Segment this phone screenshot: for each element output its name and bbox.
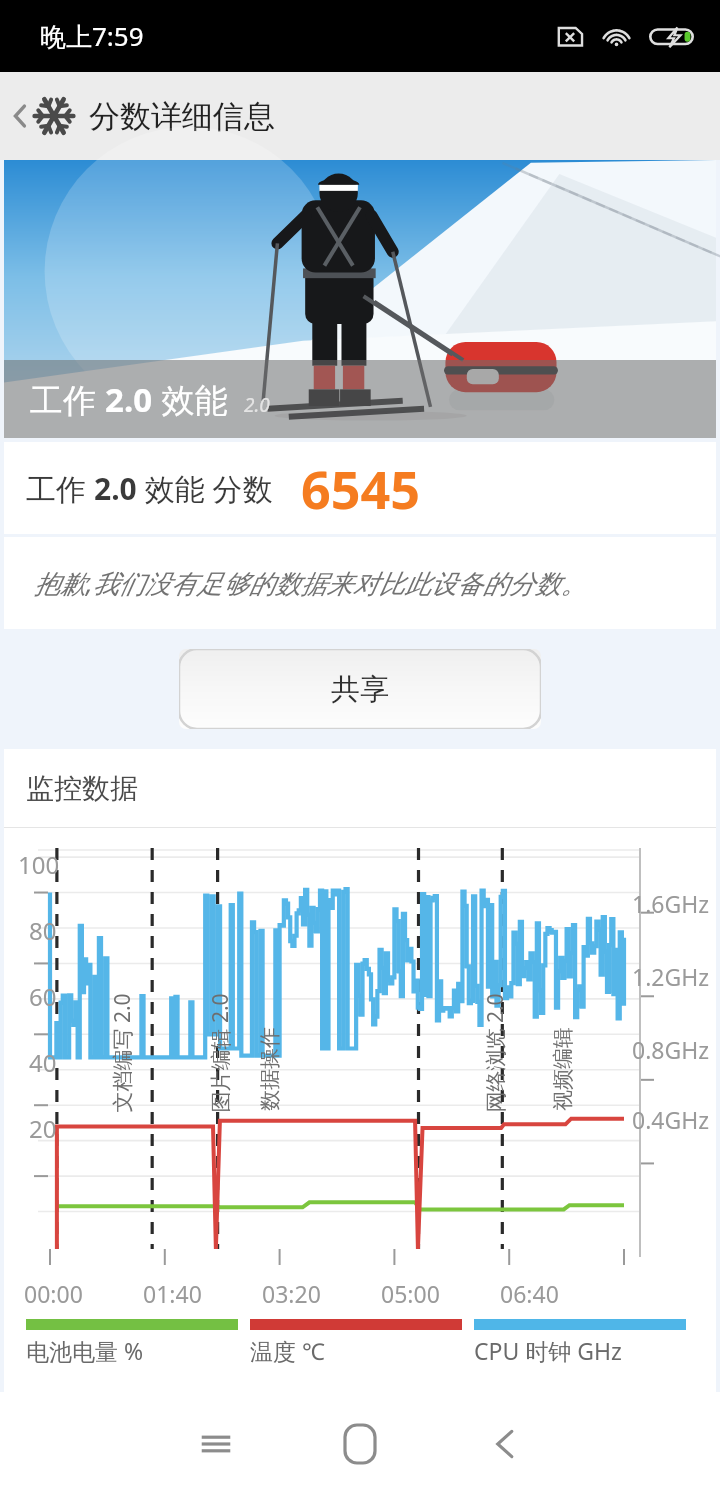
staticText: 0.8GHz xyxy=(632,1034,710,1065)
staticText: 效能 分数 xyxy=(137,468,273,509)
staticText: 温度 ℃ xyxy=(250,1335,325,1366)
button[interactable]: Recent apps xyxy=(144,1392,288,1496)
staticText: 01:40 xyxy=(143,1278,202,1309)
staticText: 分数详细信息 xyxy=(89,97,275,136)
staticText: 视频编辑 xyxy=(550,1027,576,1111)
staticText: 80 xyxy=(29,914,57,947)
staticText: 0.4GHz xyxy=(632,1104,710,1135)
button[interactable]: 工作 xyxy=(4,442,716,534)
staticText: 共享 xyxy=(331,671,389,708)
staticText: 00:00 xyxy=(24,1278,83,1309)
staticText: 1.6GHz xyxy=(632,888,710,919)
button[interactable]: 工作 xyxy=(4,160,716,438)
staticText: 电池电量 % xyxy=(26,1335,144,1366)
staticText: 网络浏览 2.0 xyxy=(480,992,509,1112)
staticText: 图片编辑 2.0 xyxy=(205,992,234,1112)
staticText: 晚上7:59 xyxy=(40,18,144,54)
staticText: CPU 时钟 GHz xyxy=(474,1335,622,1366)
staticText: 2.0 xyxy=(105,377,153,422)
staticText: 2.0 xyxy=(244,392,270,418)
button[interactable]: Back xyxy=(0,72,720,160)
staticText: 数据操作 xyxy=(257,1027,283,1111)
staticText: 60 xyxy=(29,980,57,1013)
staticText: 监控数据 xyxy=(26,771,138,806)
staticText: 效能 xyxy=(153,377,228,422)
button[interactable]: Home xyxy=(288,1392,432,1496)
staticText: 1.2GHz xyxy=(632,961,710,992)
staticText: 40 xyxy=(29,1046,57,1079)
staticText: 6545 xyxy=(301,453,420,524)
staticText: 文档编写 2.0 xyxy=(107,992,136,1112)
staticText: 20 xyxy=(29,1112,57,1145)
staticText: 06:40 xyxy=(500,1278,559,1309)
staticText: 03:20 xyxy=(262,1278,321,1309)
staticText: 抱歉,我们没有足够的数据来对比此设备的分数。 xyxy=(34,565,587,601)
button[interactable]: 共享 xyxy=(179,649,541,729)
staticText: 工作 xyxy=(26,468,94,509)
other: Back xyxy=(10,97,28,135)
staticText: 工作 xyxy=(30,377,105,422)
staticText: 100 xyxy=(18,848,60,881)
button[interactable]: Back xyxy=(432,1392,576,1496)
staticText: 05:00 xyxy=(381,1278,440,1309)
staticText: 2.0 xyxy=(94,468,137,509)
